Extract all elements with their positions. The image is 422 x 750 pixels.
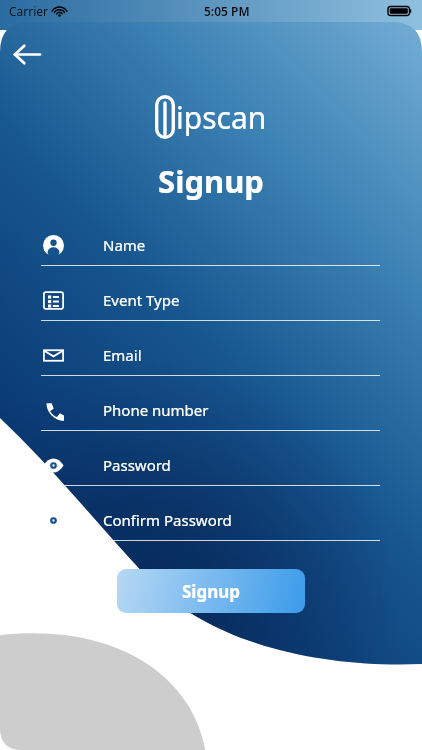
staticText: Carrier: [9, 3, 49, 19]
button[interactable]: Email: [0, 334, 422, 389]
button[interactable]: Phone number: [0, 389, 422, 444]
staticText: Name: [103, 235, 146, 255]
staticText: Signup: [182, 580, 241, 603]
button[interactable]: Back: [4, 32, 48, 76]
staticText: ipscan: [176, 97, 267, 138]
staticText: Phone number: [103, 400, 209, 420]
staticText: Confirm Password: [103, 510, 232, 530]
staticText: Event Type: [103, 290, 180, 310]
staticText: Password: [103, 455, 171, 475]
staticText: 5:05 PM: [204, 3, 250, 19]
button[interactable]: Password: [0, 444, 422, 499]
button[interactable]: Event Type: [0, 279, 422, 334]
button[interactable]: Signup: [117, 569, 305, 613]
staticText: Signup: [0, 160, 422, 202]
staticText: Email: [103, 345, 142, 365]
button[interactable]: Confirm Password: [0, 499, 422, 554]
button[interactable]: Name: [0, 224, 422, 279]
